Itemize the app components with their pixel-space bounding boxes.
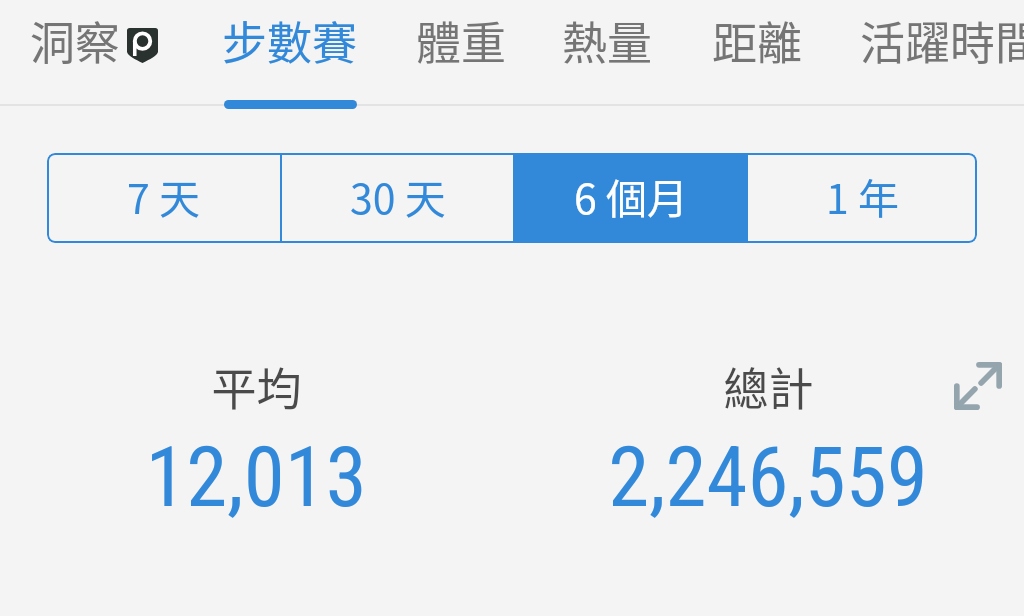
button[interactable]: 洞察	[0, 0, 188, 104]
staticText: 6 個月	[574, 166, 688, 225]
staticText: 12,013	[145, 429, 367, 526]
button[interactable]: 活躍時間	[830, 0, 1024, 104]
button[interactable]: 距離	[682, 0, 833, 104]
staticText: 平均	[211, 354, 302, 419]
staticText: 熱量	[562, 8, 653, 73]
staticText: 體重	[416, 8, 507, 73]
staticText: 30 天	[350, 166, 446, 225]
button[interactable]: Expand chart to full screen	[954, 362, 1002, 410]
staticText: 活躍時間	[860, 8, 1024, 73]
staticText: 總計	[723, 354, 814, 419]
button[interactable]: 30 天	[282, 153, 513, 243]
staticText: 步數賽	[222, 8, 358, 73]
button[interactable]: 步數賽	[192, 0, 388, 104]
staticText: 7 天	[127, 166, 200, 225]
button[interactable]: 體重	[386, 0, 537, 104]
staticText: 1 年	[826, 166, 899, 225]
staticText: 距離	[712, 8, 803, 73]
button[interactable]: 6 個月	[515, 153, 746, 243]
button[interactable]: 7 天	[47, 153, 280, 243]
staticText: 2,246,559	[608, 429, 928, 526]
button[interactable]: 1 年	[748, 153, 977, 243]
staticText: 洞察	[30, 8, 121, 73]
button[interactable]: 熱量	[532, 0, 683, 104]
